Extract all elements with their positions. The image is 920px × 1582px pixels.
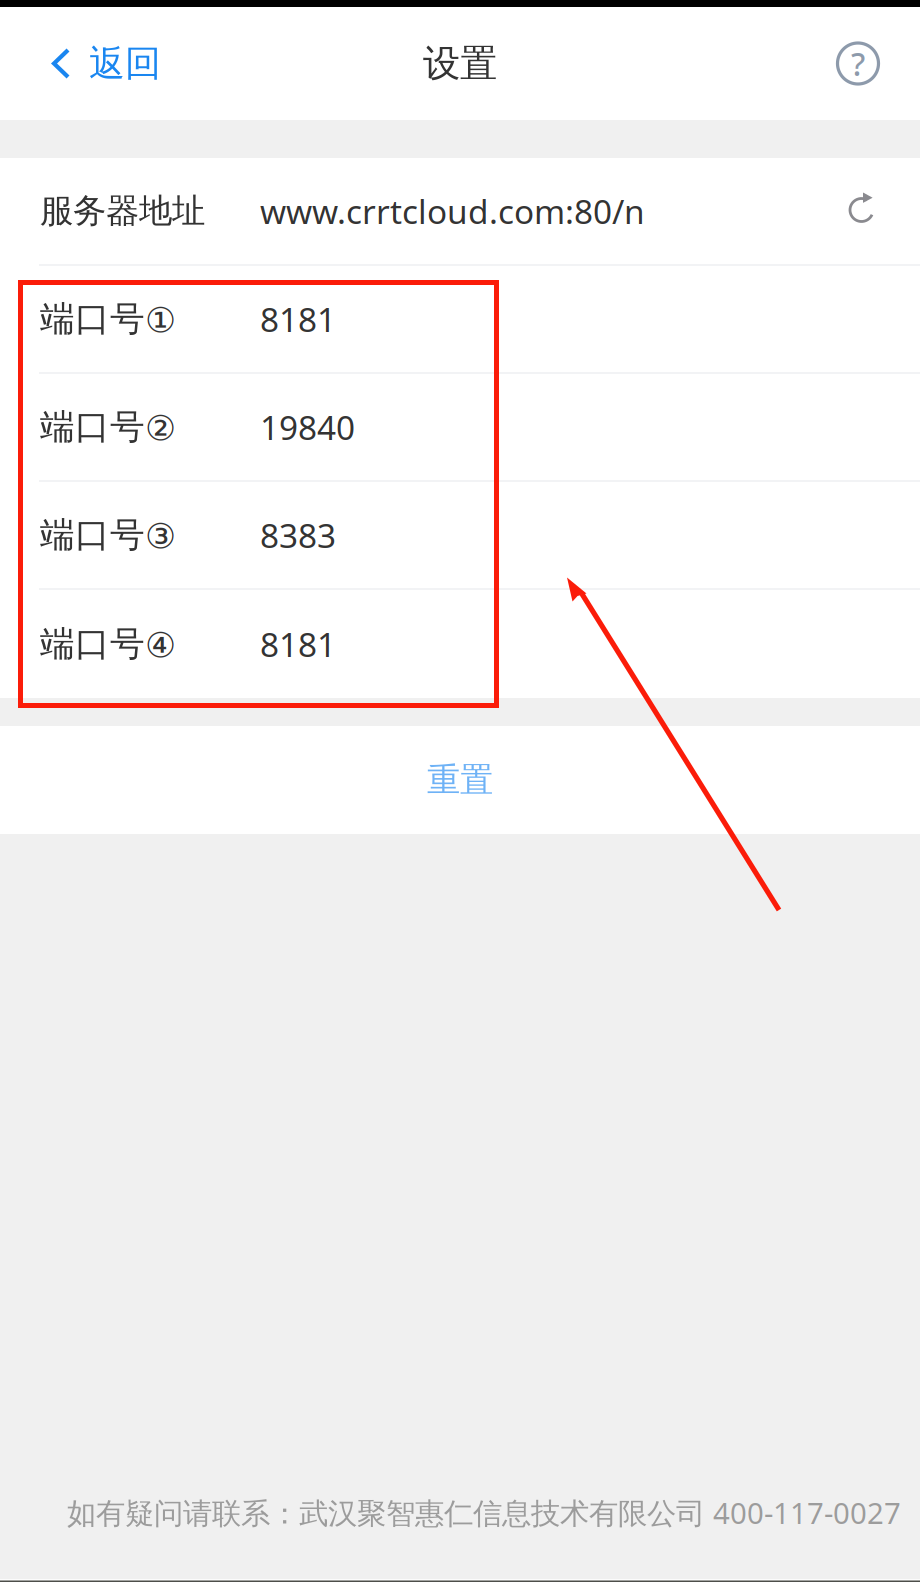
button[interactable]: 端口号④: [0, 590, 920, 698]
staticText: 端口号④: [40, 623, 176, 665]
staticText: 设置: [423, 41, 497, 86]
staticText: 返回: [89, 41, 161, 86]
staticText: 如有疑问请联系：武汉聚智惠仁信息技术有限公司 400-117-0027: [67, 1493, 901, 1532]
staticText: 8181: [260, 622, 336, 666]
staticText: 服务器地址: [40, 190, 205, 231]
button[interactable]: 返回: [0, 7, 191, 120]
staticText: 8383: [260, 513, 336, 557]
staticText: www.crrtcloud.com:80/n: [260, 189, 645, 233]
button[interactable]: 端口号②: [0, 374, 920, 480]
staticText: 端口号①: [40, 298, 176, 340]
button[interactable]: Help: [807, 7, 920, 120]
button[interactable]: 端口号①: [0, 266, 920, 372]
staticText: 端口号③: [40, 514, 176, 556]
button[interactable]: 端口号③: [0, 482, 920, 588]
staticText: 重置: [427, 759, 493, 800]
staticText: ?: [851, 42, 865, 85]
staticText: 19840: [260, 405, 355, 449]
staticText: 端口号②: [40, 406, 176, 448]
button[interactable]: 重置: [0, 726, 920, 834]
staticText: 8181: [260, 297, 336, 341]
button[interactable]: 服务器地址: [0, 158, 920, 264]
